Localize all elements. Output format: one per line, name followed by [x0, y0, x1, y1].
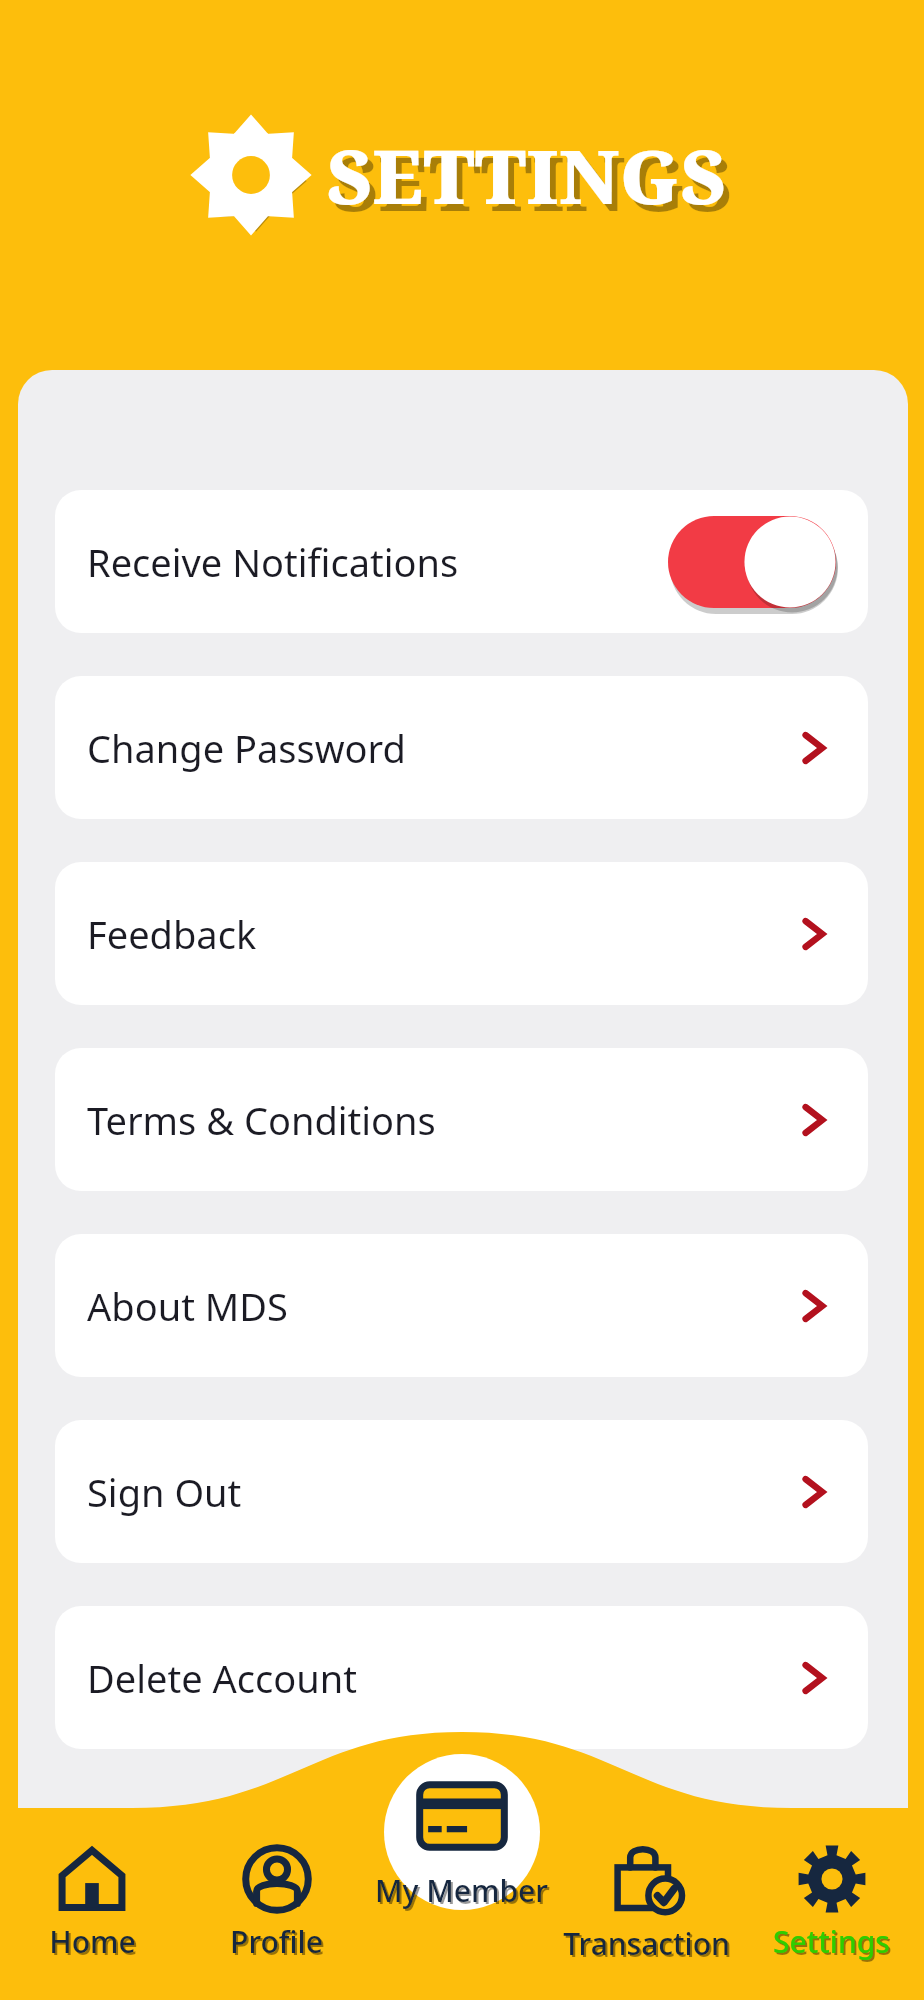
button[interactable]: Terms & Conditions [55, 1048, 868, 1191]
staticText: Settings [775, 1923, 892, 1964]
button[interactable]: Receive notifications toggle [668, 516, 836, 608]
staticText: Profile [232, 1923, 325, 1964]
button[interactable]: Delete Account [55, 1606, 868, 1749]
other: Home [58, 1845, 126, 1913]
staticText: Transaction [565, 1925, 732, 1966]
other: My Member [416, 1770, 508, 1862]
staticText: Change Password [87, 722, 406, 774]
staticText: My Member [377, 1872, 550, 1913]
button[interactable]: Transaction [554, 1740, 739, 2000]
staticText: Transaction [563, 1923, 730, 1964]
staticText: Profile [230, 1921, 323, 1962]
button[interactable]: Sign Out [55, 1420, 868, 1563]
button[interactable]: Profile [184, 1740, 369, 2000]
button[interactable]: Settings [739, 1740, 924, 2000]
staticText: Receive Notifications [87, 536, 459, 588]
staticText: SETTINGS [333, 132, 733, 233]
staticText: Terms & Conditions [87, 1094, 436, 1146]
staticText: Home [49, 1921, 136, 1962]
button[interactable]: About MDS [55, 1234, 868, 1377]
staticText: Feedback [87, 908, 257, 960]
button[interactable]: Change Password [55, 676, 868, 819]
button[interactable]: Receive Notifications [55, 490, 868, 633]
other: Settings [798, 1845, 866, 1913]
staticText: Home [51, 1923, 138, 1964]
staticText: Delete Account [87, 1652, 357, 1704]
other: Transaction [612, 1845, 682, 1915]
other: Profile [243, 1845, 311, 1913]
staticText: About MDS [87, 1280, 288, 1332]
staticText: Sign Out [87, 1466, 242, 1518]
staticText: My Member [375, 1870, 548, 1911]
button[interactable]: Feedback [55, 862, 868, 1005]
button[interactable]: My Member [369, 1740, 554, 2000]
staticText: Settings [773, 1921, 890, 1962]
staticText: SETTINGS [327, 125, 727, 226]
button[interactable]: Home [0, 1740, 184, 2000]
